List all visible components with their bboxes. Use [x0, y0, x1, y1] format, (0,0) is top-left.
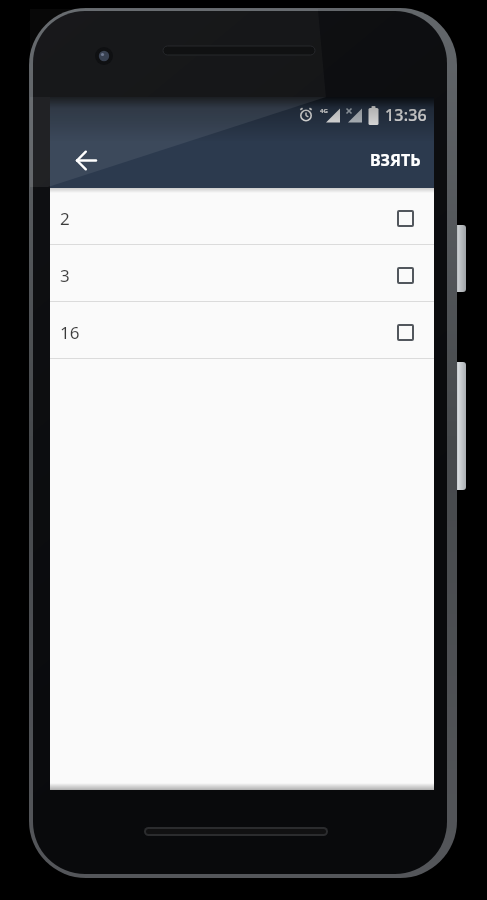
- staticText: 4G: [320, 107, 328, 115]
- staticText: 2: [60, 207, 70, 230]
- staticText: ВЗЯТЬ: [370, 149, 421, 171]
- button[interactable]: 16: [50, 302, 434, 358]
- staticText: 16: [60, 321, 80, 344]
- button[interactable]: 2: [50, 188, 434, 244]
- staticText: 13:36: [385, 104, 427, 126]
- button[interactable]: ВЗЯТЬ: [356, 135, 434, 185]
- button[interactable]: 3: [50, 245, 434, 301]
- button[interactable]: [50, 144, 102, 176]
- staticText: 3: [60, 264, 70, 287]
